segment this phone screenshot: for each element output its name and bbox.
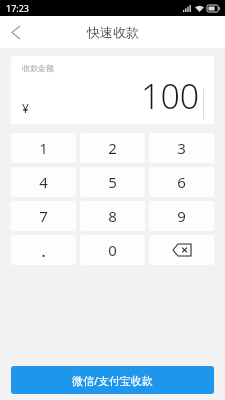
button[interactable]: 1 <box>11 133 76 163</box>
staticText: 收款金额 <box>22 63 54 73</box>
button[interactable]: 4 <box>11 167 76 197</box>
staticText: 8 <box>108 206 117 226</box>
staticText: 7 <box>39 206 48 226</box>
button[interactable]: 8 <box>80 201 145 231</box>
staticText: 100 <box>141 73 200 119</box>
button[interactable]: 9 <box>149 201 214 231</box>
staticText: 3 <box>177 138 186 158</box>
staticText: 17:23 <box>6 2 30 14</box>
button[interactable]: 7 <box>11 201 76 231</box>
button[interactable]: 2 <box>80 133 145 163</box>
button[interactable]: Back <box>0 16 32 48</box>
staticText: 快速收款 <box>87 24 139 40</box>
button[interactable]: 3 <box>149 133 214 163</box>
button[interactable]: 微信/支付宝收款 <box>11 366 214 394</box>
button[interactable]: . <box>11 235 76 265</box>
staticText: ¥ <box>22 100 29 116</box>
staticText: 1 <box>39 138 48 158</box>
button[interactable]: 5 <box>80 167 145 197</box>
button[interactable]: 收款金额 <box>11 56 214 124</box>
staticText: 9 <box>177 206 186 226</box>
staticText: 微信/支付宝收款 <box>72 373 154 388</box>
staticText: 5 <box>108 172 117 192</box>
button[interactable]: 0 <box>80 235 145 265</box>
staticText: 2 <box>108 138 117 158</box>
button[interactable]: Backspace <box>149 235 214 265</box>
button[interactable]: 6 <box>149 167 214 197</box>
staticText: . <box>41 239 46 262</box>
staticText: 0 <box>108 240 117 260</box>
staticText: 4 <box>39 172 48 192</box>
staticText: 6 <box>177 172 186 192</box>
